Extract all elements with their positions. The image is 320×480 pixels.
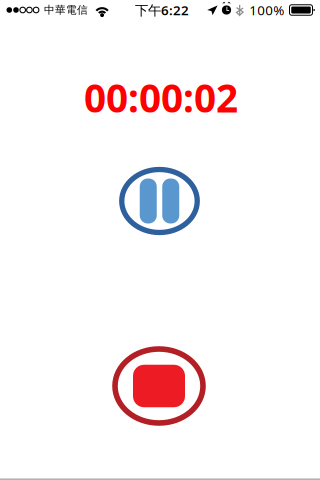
staticText: 00:00:02 — [84, 72, 238, 123]
staticText: 下午6:22 — [135, 1, 189, 19]
staticText: 100% — [249, 1, 284, 19]
button[interactable]: Stop — [110, 344, 207, 427]
button[interactable]: Pause — [117, 165, 201, 237]
staticText: 中華電信 — [44, 3, 88, 16]
